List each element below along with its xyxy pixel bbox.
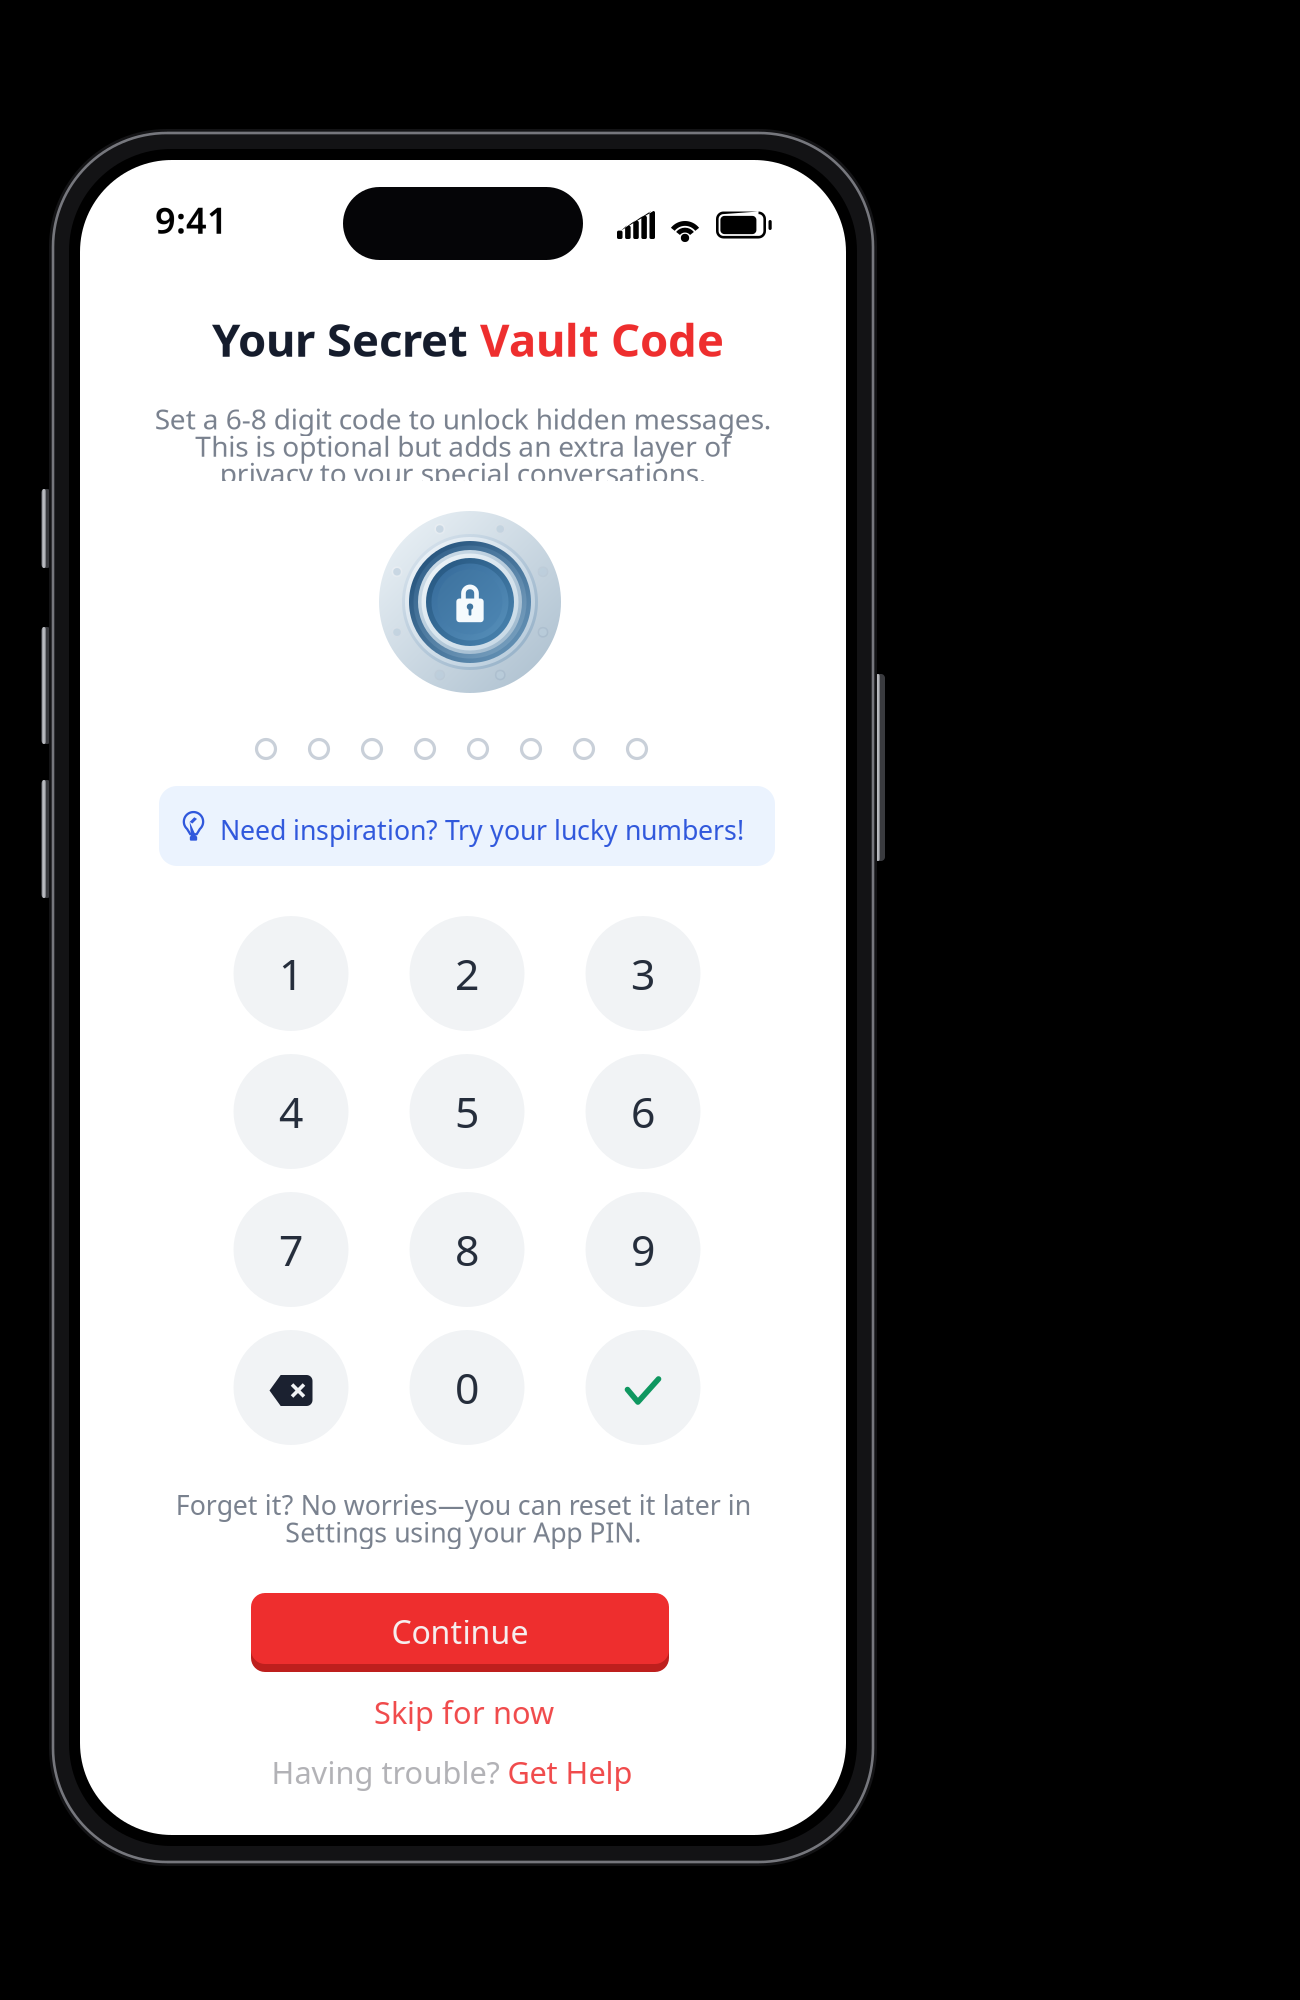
staticText: Having trouble? — [271, 1752, 507, 1792]
button[interactable]: Continue — [251, 1593, 669, 1672]
staticText: Forget it? No worries—you can reset it l… — [175, 1487, 750, 1550]
button[interactable]: 9 — [585, 1192, 700, 1307]
staticText: 7 — [279, 1221, 303, 1278]
button[interactable]: 3 — [585, 916, 700, 1031]
staticText: Your Secret — [212, 309, 480, 369]
staticText: 8 — [455, 1221, 479, 1278]
button[interactable]: Need inspiration? Try your lucky numbers… — [159, 786, 775, 866]
staticText: 9 — [631, 1221, 655, 1278]
button[interactable]: 5 — [409, 1054, 524, 1169]
staticText: 5 — [455, 1083, 479, 1140]
button[interactable]: 1 — [233, 916, 348, 1031]
button[interactable]: Get Help — [507, 1752, 632, 1792]
staticText: Continue — [391, 1610, 528, 1653]
button[interactable]: Delete — [233, 1330, 348, 1445]
button[interactable]: Skip for now — [314, 1690, 614, 1734]
button[interactable]: 2 — [409, 916, 524, 1031]
button[interactable]: 6 — [585, 1054, 700, 1169]
button[interactable]: 8 — [409, 1192, 524, 1307]
staticText: 3 — [631, 945, 655, 1002]
staticText: 6 — [631, 1083, 655, 1140]
staticText: 2 — [455, 945, 479, 1002]
staticText: 4 — [279, 1083, 303, 1140]
staticText: 9:41 — [155, 196, 228, 244]
button[interactable]: Confirm — [585, 1330, 700, 1445]
staticText: Get Help — [507, 1752, 632, 1792]
staticText: 0 — [455, 1359, 479, 1416]
button[interactable]: 7 — [233, 1192, 348, 1307]
staticText: 1 — [279, 945, 303, 1002]
button[interactable]: 0 — [409, 1330, 524, 1445]
staticText: Skip for now — [374, 1692, 554, 1732]
staticText: Need inspiration? Try your lucky numbers… — [220, 812, 744, 847]
staticText: Vault Code — [480, 309, 724, 369]
button[interactable]: 4 — [233, 1054, 348, 1169]
staticText: Set a 6-8 digit code to unlock hidden me… — [154, 400, 771, 491]
